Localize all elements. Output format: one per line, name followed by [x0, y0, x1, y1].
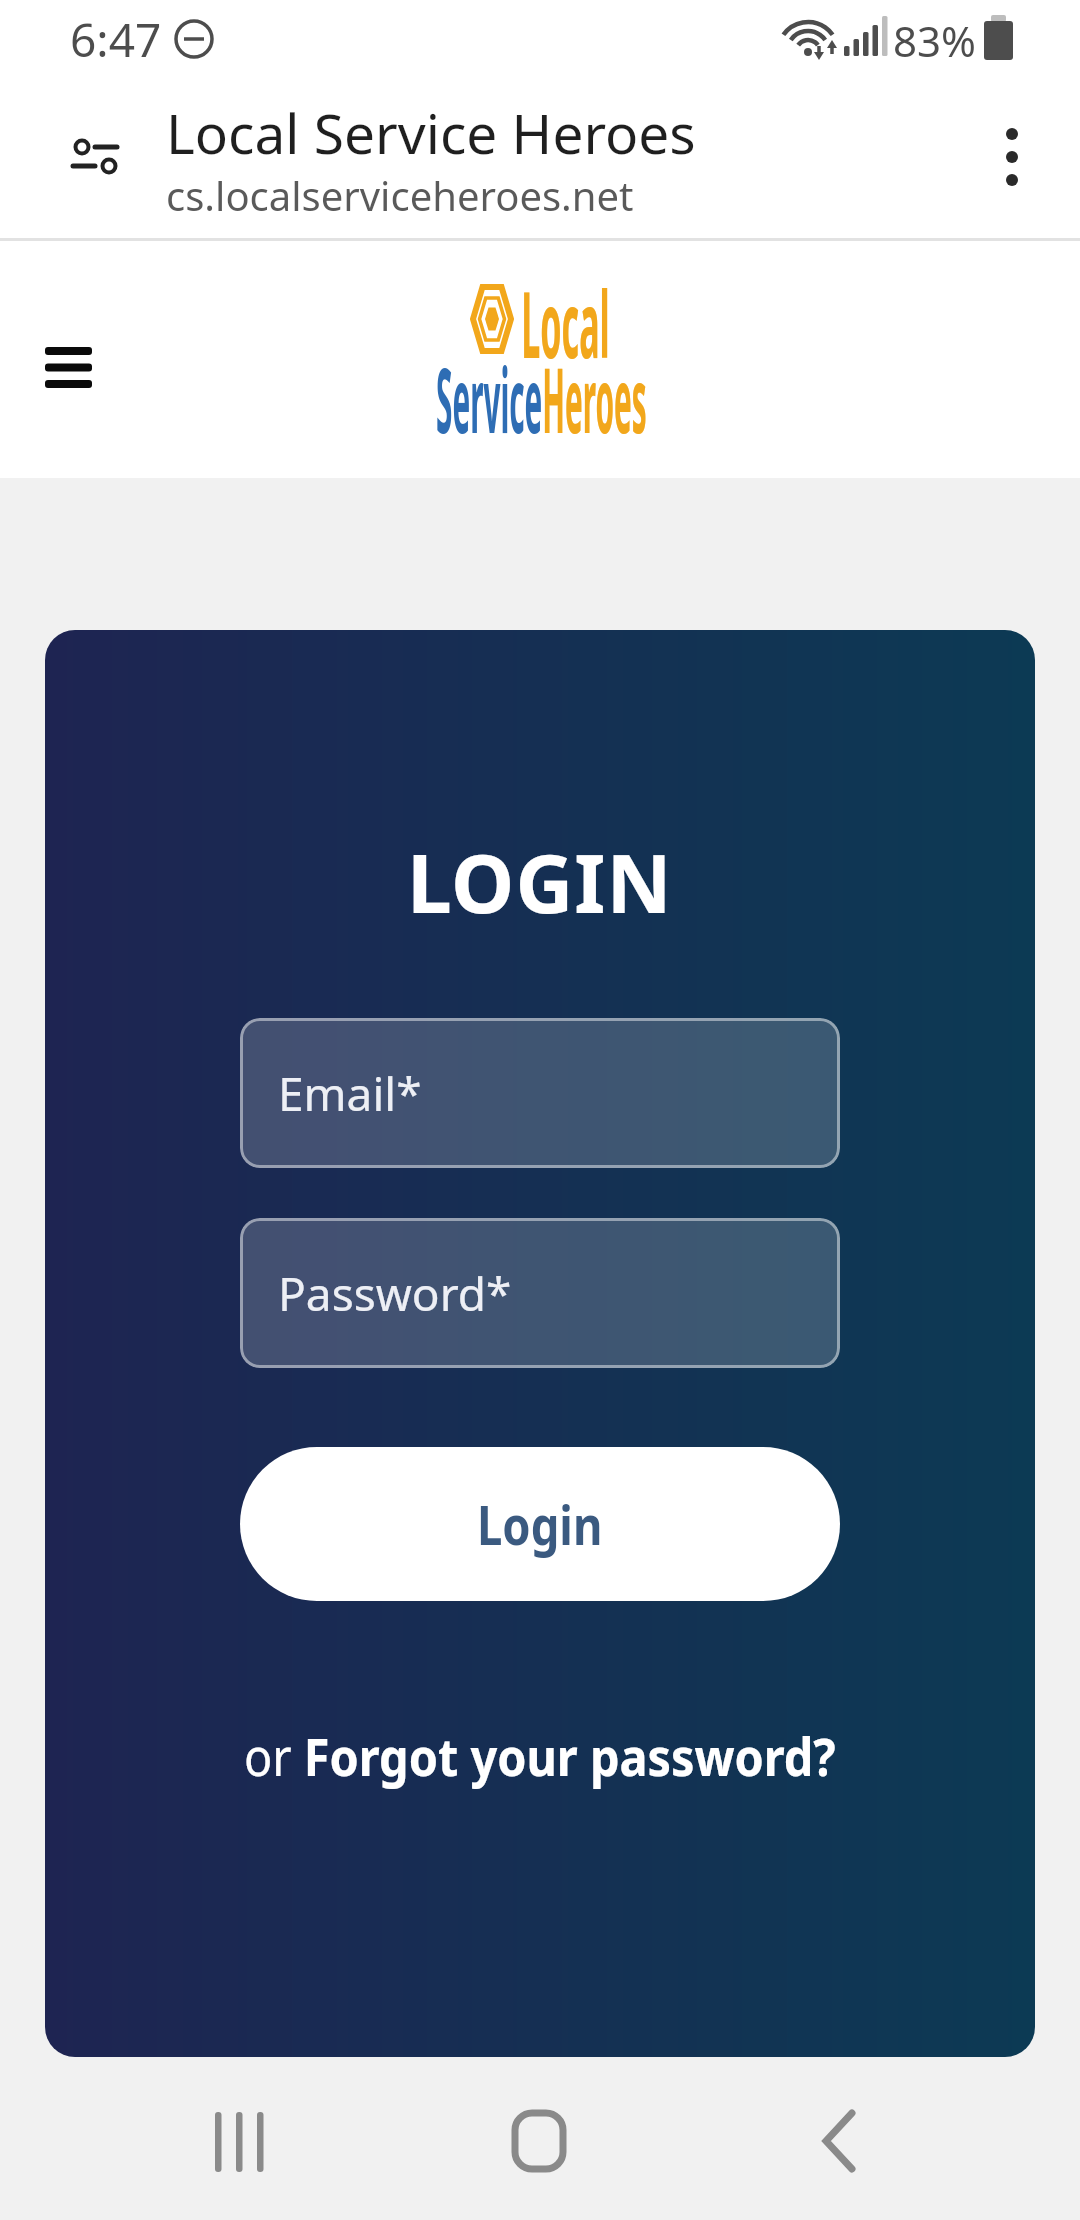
button[interactable]: Email* [240, 1018, 840, 1168]
staticText: Password* [278, 1262, 512, 1325]
button[interactable] [494, 2096, 584, 2186]
button[interactable] [56, 126, 128, 190]
staticText: 6:47 [70, 8, 162, 71]
staticText: ServiceHeroes [436, 337, 647, 460]
staticText: Local [521, 260, 610, 380]
staticText: Login [477, 1487, 603, 1561]
button[interactable] [35, 335, 103, 401]
staticText: or Forgot your password? [244, 1720, 836, 1791]
staticText: cs.localserviceheroes.net [166, 168, 634, 222]
button[interactable]: Password* [240, 1218, 840, 1368]
staticText: LOGIN [407, 827, 673, 936]
staticText: 83% [893, 12, 976, 69]
button[interactable] [796, 2096, 886, 2186]
staticText: Local Service Heroes [166, 95, 696, 170]
button[interactable]: Login [240, 1447, 840, 1601]
staticText: Email* [278, 1062, 422, 1125]
button[interactable] [198, 2096, 288, 2186]
button[interactable]: or Forgot your password? [45, 1720, 1035, 1791]
button[interactable] [984, 120, 1040, 196]
